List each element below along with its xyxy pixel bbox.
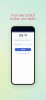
staticText: Password [14,44,22,45]
button[interactable]: Sign in [15,48,31,51]
staticText: Your day, sorted [11,14,35,17]
button[interactable]: Forgot password? [12,52,34,54]
staticText: Log in [18,33,27,37]
staticText: before you wake [10,17,36,21]
staticText: Sign in [21,49,25,50]
staticText: name@company.com [14,39,29,41]
staticText: Forgot password? [16,52,30,54]
